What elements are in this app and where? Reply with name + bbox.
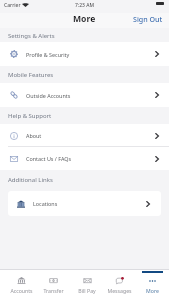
button[interactable]: Bill Pay [70,270,103,300]
staticText: Profile & Security [26,51,70,58]
button[interactable]: Transfer [37,270,70,300]
button[interactable]: About [0,124,169,147]
button[interactable]: Sign Out [127,13,169,27]
staticText: Outside Accounts [26,92,71,99]
staticText: More [146,287,159,294]
button[interactable]: Contact Us / FAQs [0,147,169,170]
button[interactable]: Outside Accounts [0,83,169,107]
staticText: Sign Out [133,14,163,24]
staticText: Contact Us / FAQs [26,155,72,162]
staticText: More [73,13,96,25]
button[interactable]: Profile & Security [0,42,169,66]
button[interactable]: Messages [103,270,136,300]
staticText: Messages [107,287,132,294]
staticText: Mobile Features [8,71,54,79]
staticText: Additional Links [8,176,53,184]
staticText: Transfer [43,287,64,294]
button[interactable]: Locations [8,191,161,216]
staticText: Carrier [4,2,21,9]
staticText: Help & Support [8,112,52,120]
staticText: 7:23 AM [75,2,95,9]
staticText: About [26,132,42,139]
button[interactable]: Accounts [5,270,37,300]
staticText: Locations [33,200,58,207]
staticText: Settings & Alerts [8,32,55,40]
staticText: Bill Pay [78,287,96,294]
button[interactable]: More [136,270,169,300]
staticText: Accounts [10,287,33,294]
